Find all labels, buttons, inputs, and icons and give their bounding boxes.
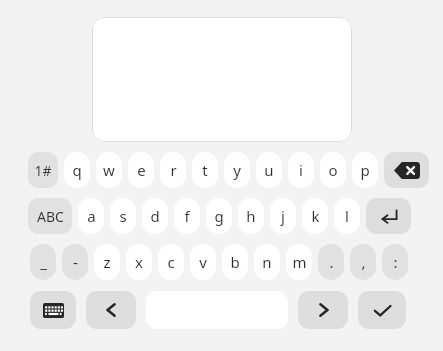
staticText: o bbox=[328, 160, 338, 180]
button[interactable]: z bbox=[94, 244, 120, 280]
staticText: i bbox=[299, 160, 303, 180]
button[interactable]: n bbox=[254, 244, 280, 280]
button[interactable]: p bbox=[352, 152, 378, 188]
button[interactable]: Done bbox=[358, 291, 406, 329]
staticText: p bbox=[360, 160, 370, 180]
staticText: m bbox=[292, 252, 307, 272]
button[interactable]: f bbox=[174, 198, 200, 234]
staticText: r bbox=[170, 160, 177, 180]
button[interactable]: d bbox=[142, 198, 168, 234]
staticText: ABC bbox=[37, 207, 64, 226]
staticText: , bbox=[361, 252, 366, 272]
button[interactable]: a bbox=[78, 198, 104, 234]
button[interactable]: Switch keyboard bbox=[30, 291, 76, 329]
staticText: b bbox=[230, 252, 240, 272]
staticText: f bbox=[184, 206, 190, 226]
button[interactable]: e bbox=[128, 152, 154, 188]
button[interactable]: : bbox=[382, 244, 408, 280]
button[interactable]: Next bbox=[298, 291, 348, 329]
button[interactable]: y bbox=[224, 152, 250, 188]
button[interactable]: r bbox=[160, 152, 186, 188]
button[interactable] bbox=[92, 17, 352, 142]
staticText: d bbox=[150, 206, 160, 226]
button[interactable]: j bbox=[270, 198, 296, 234]
button[interactable]: 1# bbox=[28, 152, 58, 188]
button[interactable]: l bbox=[334, 198, 360, 234]
button[interactable]: - bbox=[62, 244, 88, 280]
staticText: - bbox=[73, 252, 78, 272]
button[interactable]: w bbox=[96, 152, 122, 188]
staticText: j bbox=[281, 206, 285, 226]
staticText: k bbox=[311, 206, 320, 226]
staticText: e bbox=[137, 160, 146, 180]
staticText: y bbox=[233, 160, 241, 180]
staticText: . bbox=[329, 252, 334, 272]
staticText: 1# bbox=[34, 161, 52, 180]
button[interactable]: _ bbox=[30, 244, 56, 280]
button[interactable]: Previous bbox=[86, 291, 136, 329]
staticText: x bbox=[135, 252, 143, 272]
button[interactable]: g bbox=[206, 198, 232, 234]
staticText: n bbox=[262, 252, 272, 272]
staticText: w bbox=[103, 160, 115, 180]
button[interactable]: , bbox=[350, 244, 376, 280]
button[interactable]: q bbox=[64, 152, 90, 188]
button[interactable]: o bbox=[320, 152, 346, 188]
staticText: _ bbox=[40, 252, 47, 272]
staticText: t bbox=[202, 160, 208, 180]
button[interactable]: x bbox=[126, 244, 152, 280]
button[interactable]: i bbox=[288, 152, 314, 188]
staticText: q bbox=[72, 160, 82, 180]
staticText: z bbox=[103, 252, 111, 272]
button[interactable]: Enter bbox=[366, 198, 411, 234]
button[interactable]: Backspace bbox=[384, 152, 429, 188]
staticText: h bbox=[246, 206, 256, 226]
staticText: s bbox=[119, 206, 127, 226]
button[interactable]: m bbox=[286, 244, 312, 280]
button[interactable]: h bbox=[238, 198, 264, 234]
button[interactable]: ABC bbox=[28, 198, 72, 234]
button[interactable]: s bbox=[110, 198, 136, 234]
button[interactable]: u bbox=[256, 152, 282, 188]
staticText: c bbox=[167, 252, 175, 272]
staticText: v bbox=[199, 252, 207, 272]
staticText: u bbox=[264, 160, 274, 180]
staticText: : bbox=[393, 252, 398, 272]
staticText: a bbox=[87, 206, 96, 226]
staticText: l bbox=[345, 206, 349, 226]
button[interactable]: k bbox=[302, 198, 328, 234]
staticText: g bbox=[214, 206, 224, 226]
button[interactable]: . bbox=[318, 244, 344, 280]
button[interactable]: b bbox=[222, 244, 248, 280]
button[interactable]: t bbox=[192, 152, 218, 188]
button[interactable]: c bbox=[158, 244, 184, 280]
button[interactable]: v bbox=[190, 244, 216, 280]
